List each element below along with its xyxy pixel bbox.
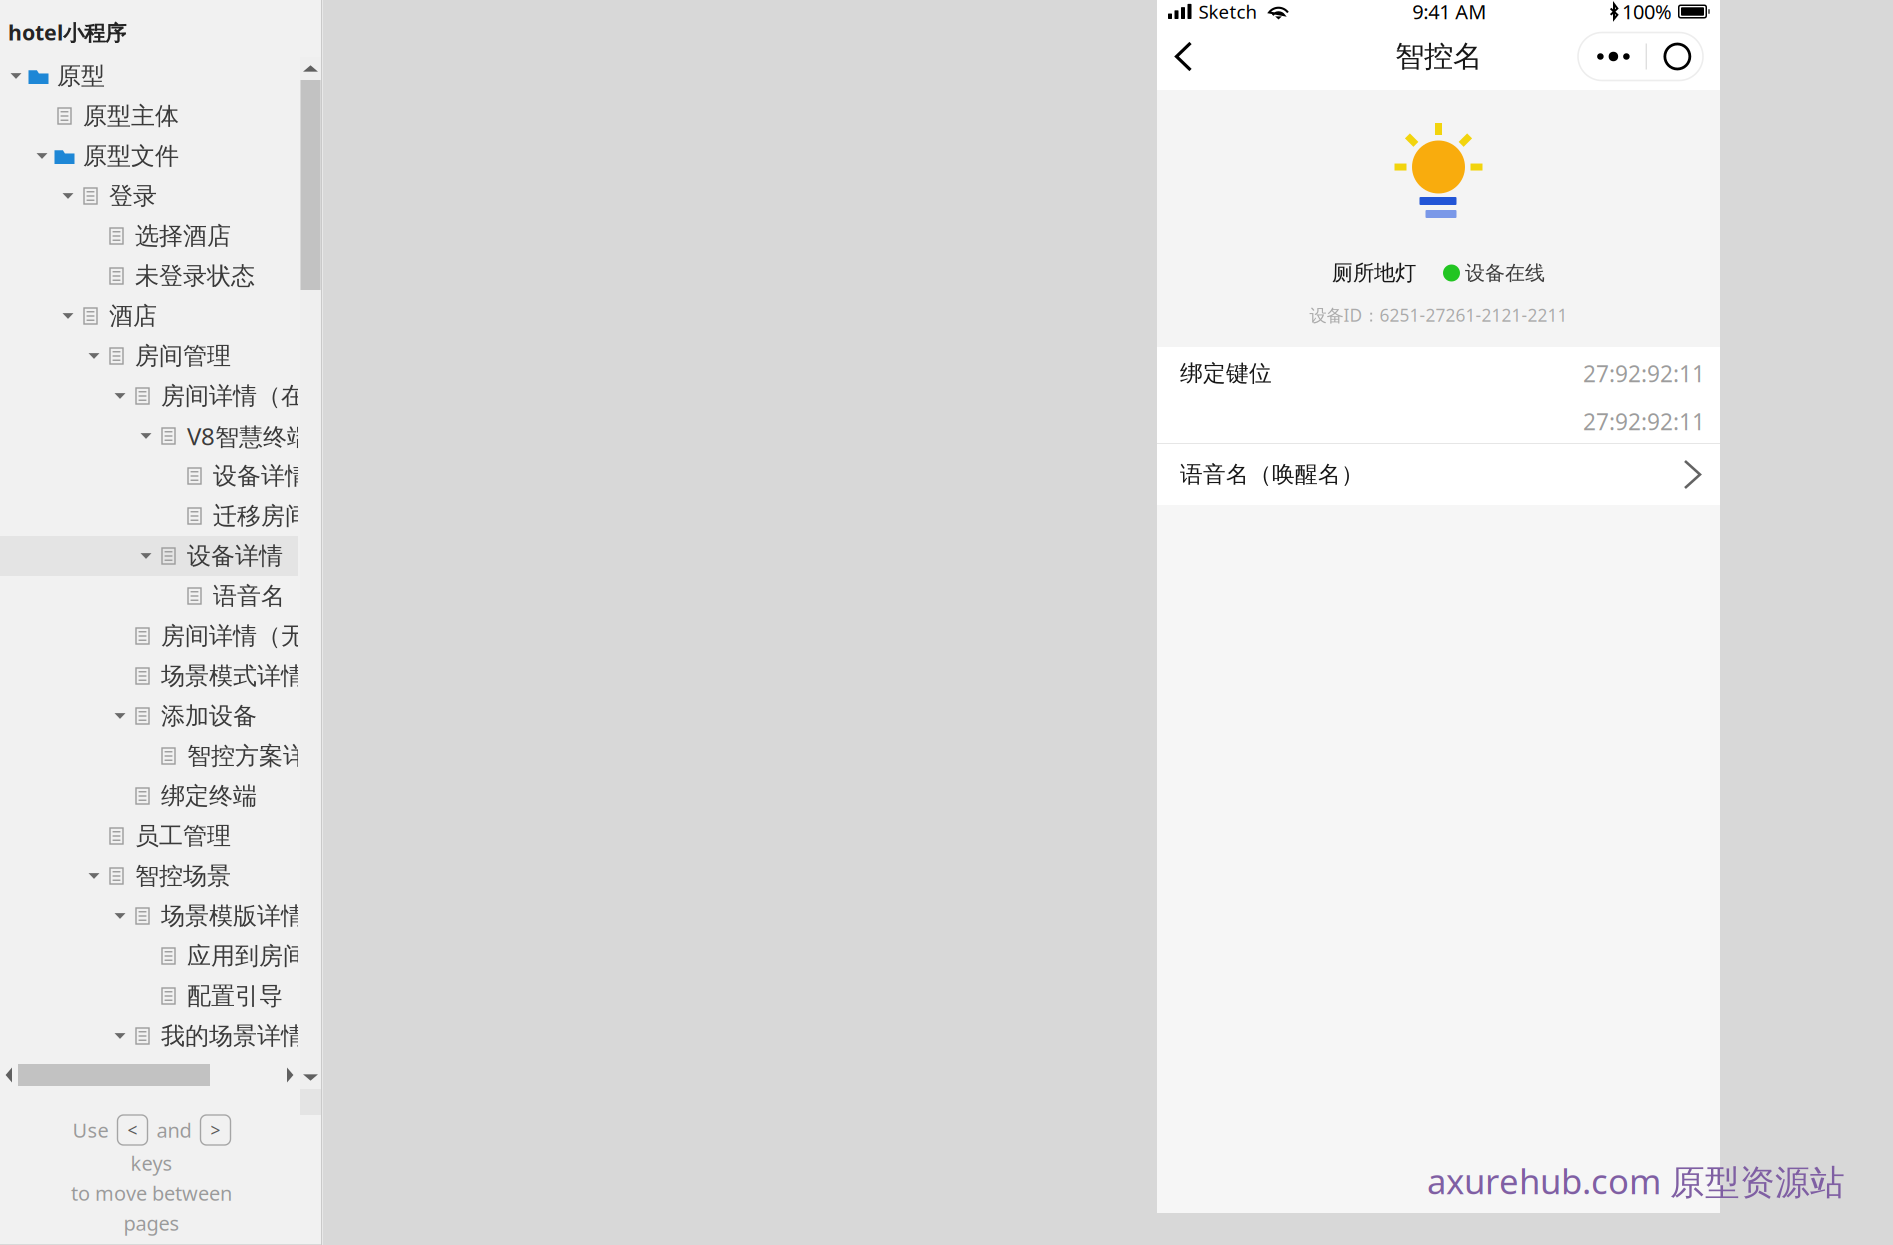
staticText: 设备在线 bbox=[1465, 261, 1545, 285]
staticText: 原型主体 bbox=[83, 101, 179, 131]
staticText: hotel小程序 bbox=[8, 18, 126, 46]
staticText: 设备ID：6251-27261-2121-2211 bbox=[1309, 303, 1567, 326]
button[interactable]: 应用到房间 bbox=[0, 936, 298, 976]
staticText: 原型文件 bbox=[83, 141, 179, 171]
staticText: 房间详情（无设 bbox=[161, 621, 329, 651]
button[interactable]: 设备详情 bbox=[0, 536, 298, 576]
staticText: 房间管理 bbox=[135, 341, 231, 371]
staticText: 智控场景 bbox=[135, 861, 231, 891]
button[interactable]: 迁移房间 bbox=[0, 496, 298, 536]
button[interactable]: 返回 bbox=[1157, 23, 1210, 90]
staticText: keys bbox=[130, 1150, 172, 1176]
staticText: < bbox=[127, 1118, 137, 1141]
button[interactable]: 原型主体 bbox=[0, 96, 298, 136]
staticText: 酒店 bbox=[109, 301, 157, 331]
button[interactable]: 智控场景 bbox=[0, 856, 298, 896]
staticText: 绑定终端 bbox=[161, 781, 257, 811]
button[interactable]: 原型文件 bbox=[0, 136, 298, 176]
staticText: 未登录状态 bbox=[135, 261, 255, 291]
staticText: and bbox=[156, 1117, 191, 1143]
staticText: 迁移房间 bbox=[213, 501, 309, 531]
button[interactable]: 绑定终端 bbox=[0, 776, 298, 816]
button[interactable]: 房间详情（无设 bbox=[0, 616, 298, 656]
button[interactable]: 登录 bbox=[0, 176, 298, 216]
button[interactable]: 设备详情 bbox=[0, 456, 298, 496]
staticText: 场景模式详情 bbox=[161, 661, 305, 691]
button[interactable]: 更多 bbox=[1578, 32, 1703, 80]
button[interactable]: 我的场景详情 bbox=[0, 1016, 298, 1056]
button[interactable]: 场景模式详情 bbox=[0, 656, 298, 696]
staticText: 27:92:92:11 bbox=[1583, 406, 1705, 436]
staticText: 设备详情 bbox=[213, 461, 309, 491]
staticText: 9:41 AM bbox=[1412, 0, 1486, 25]
button[interactable]: 酒店 bbox=[0, 296, 298, 336]
staticText: 27:92:92:11 bbox=[1583, 358, 1705, 388]
button[interactable]: 员工管理 bbox=[0, 816, 298, 856]
staticText: Sketch bbox=[1198, 0, 1257, 24]
button[interactable]: 绑定键位 bbox=[1157, 347, 1720, 443]
button[interactable]: 智控方案详情 bbox=[0, 736, 298, 776]
staticText: 应用到房间 bbox=[187, 941, 307, 971]
staticText: 语音名（ bbox=[213, 581, 309, 611]
staticText: 原型 bbox=[57, 61, 105, 91]
button[interactable]: 未登录状态 bbox=[0, 256, 298, 296]
staticText: 智控名 bbox=[1395, 38, 1482, 74]
button[interactable]: 添加设备 bbox=[0, 696, 298, 736]
staticText: 100% bbox=[1622, 0, 1672, 25]
button[interactable]: 配置引导 bbox=[0, 976, 298, 1016]
staticText: 房间详情（在线 bbox=[161, 381, 329, 411]
staticText: 绑定键位 bbox=[1180, 360, 1272, 387]
staticText: 配置引导 bbox=[187, 981, 283, 1011]
staticText: 添加设备 bbox=[161, 701, 257, 731]
staticText: 选择酒店 bbox=[135, 221, 231, 251]
staticText: 登录 bbox=[109, 181, 157, 211]
button[interactable]: 语音名（ bbox=[0, 576, 298, 616]
button[interactable]: 语音名（唤醒名） bbox=[1157, 444, 1720, 505]
staticText: V8智慧终端 bbox=[187, 420, 311, 452]
staticText: to move between bbox=[71, 1180, 232, 1206]
staticText: pages bbox=[123, 1210, 179, 1236]
staticText: 我的场景详情 bbox=[161, 1021, 305, 1051]
button[interactable]: 房间管理 bbox=[0, 336, 298, 376]
staticText: 场景模版详情 bbox=[161, 901, 305, 931]
button[interactable]: 选择酒店 bbox=[0, 216, 298, 256]
staticText: 员工管理 bbox=[135, 821, 231, 851]
staticText: 智控方案详情 bbox=[187, 741, 331, 771]
staticText: 语音名（唤醒名） bbox=[1180, 461, 1364, 488]
staticText: axurehub.com 原型资源站 bbox=[1427, 1158, 1845, 1204]
staticText: > bbox=[210, 1118, 220, 1141]
staticText: 厕所地灯 bbox=[1332, 260, 1416, 286]
button[interactable]: 房间详情（在线 bbox=[0, 376, 298, 416]
staticText: 设备详情 bbox=[187, 541, 283, 571]
button[interactable]: 场景模版详情 bbox=[0, 896, 298, 936]
staticText: Use bbox=[72, 1117, 108, 1143]
button[interactable]: 原型 bbox=[0, 56, 298, 96]
button[interactable]: V8智慧终端 bbox=[0, 416, 298, 456]
